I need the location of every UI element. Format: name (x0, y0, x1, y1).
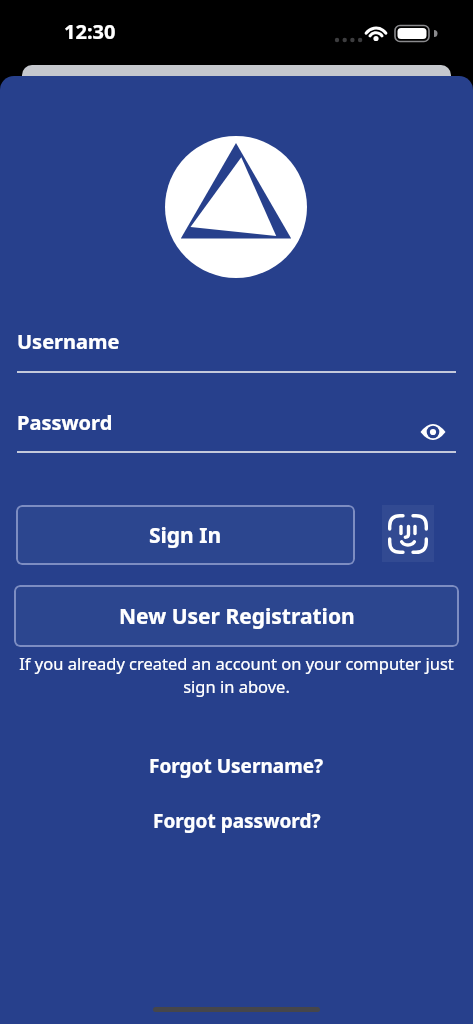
staticText: New User Registration (119, 602, 355, 631)
staticText: Forgot Username? (149, 753, 324, 779)
staticText: 12:30 (64, 18, 116, 45)
staticText: Username (17, 328, 120, 355)
button[interactable]: New User Registration (14, 585, 459, 647)
button[interactable]: Sign In (16, 505, 355, 565)
staticText: If you already created an account on you… (0, 652, 473, 698)
staticText: Password (17, 409, 113, 436)
staticText: Forgot password? (153, 808, 321, 834)
staticText: Sign In (149, 521, 222, 550)
button[interactable] (382, 505, 434, 562)
button[interactable]: Forgot password? (0, 808, 473, 834)
button[interactable]: Forgot Username? (0, 753, 473, 779)
